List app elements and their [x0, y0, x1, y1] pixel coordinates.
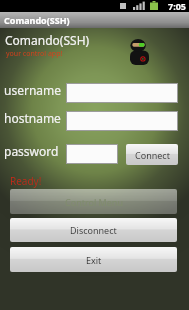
- staticText: 7:05: [168, 0, 186, 12]
- staticText: Control Menu: [65, 196, 123, 208]
- staticText: username: [4, 82, 62, 98]
- staticText: your control app!: [6, 49, 63, 59]
- staticText: Disconnect: [70, 224, 117, 236]
- staticText: hostname: [4, 110, 61, 126]
- staticText: Comando(SSH): [5, 32, 90, 48]
- staticText: Connect: [135, 149, 170, 161]
- staticText: password: [4, 143, 59, 159]
- staticText: Ready!: [10, 174, 42, 188]
- button[interactable]: Exit: [10, 247, 177, 272]
- button[interactable]: Disconnect: [10, 218, 177, 242]
- button[interactable]: Control Menu: [10, 189, 177, 214]
- staticText: Comando(SSH): [4, 14, 70, 26]
- staticText: Exit: [86, 254, 102, 266]
- other: App logo: [130, 39, 149, 65]
- button[interactable]: Connect: [126, 144, 178, 165]
